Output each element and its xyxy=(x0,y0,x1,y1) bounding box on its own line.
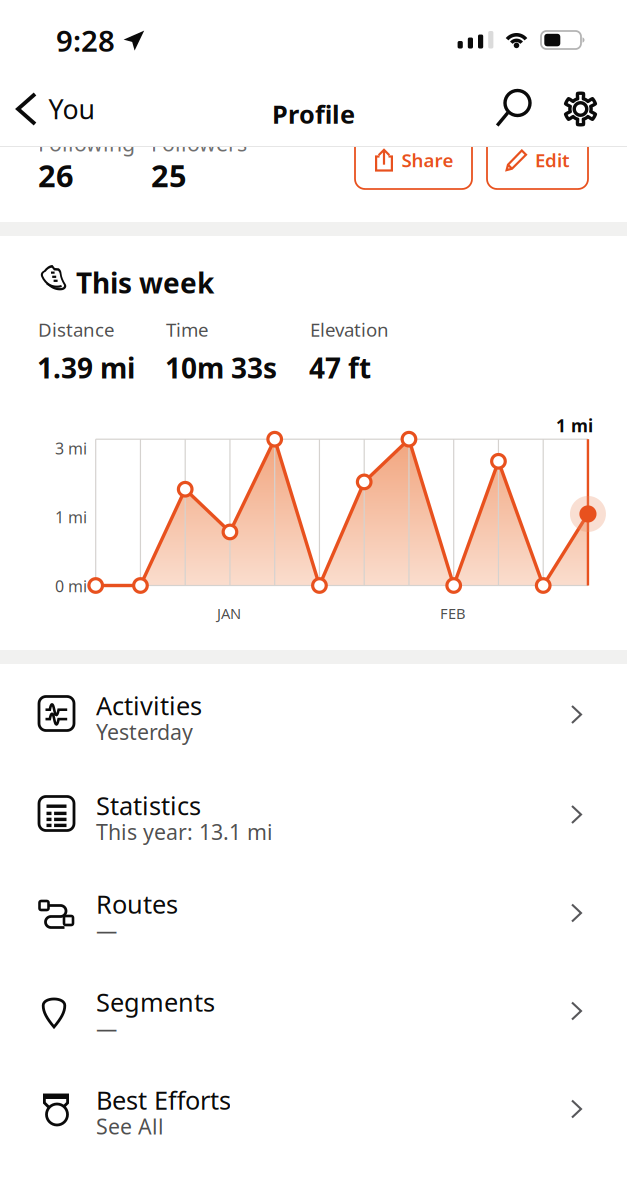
staticText: Yesterday xyxy=(96,717,193,746)
staticText: Followers xyxy=(151,129,247,157)
button[interactable]: Search xyxy=(474,72,552,146)
staticText: — xyxy=(96,1014,117,1042)
staticText: 47 ft xyxy=(309,349,371,386)
button[interactable]: Best Efforts xyxy=(0,1060,627,1158)
staticText: Edit xyxy=(535,148,570,172)
staticText: 0 mi xyxy=(55,575,87,597)
button[interactable]: Share xyxy=(355,131,472,189)
staticText: Distance xyxy=(38,317,115,342)
staticText: Following xyxy=(38,129,135,157)
button[interactable]: Segments xyxy=(0,962,627,1060)
staticText: This year: 13.1 mi xyxy=(96,817,273,846)
staticText: See All xyxy=(96,1112,164,1140)
staticText: 10m 33s xyxy=(165,349,277,386)
staticText: Routes xyxy=(96,887,178,921)
staticText: — xyxy=(96,916,117,944)
button[interactable]: Settings xyxy=(552,72,609,146)
staticText: 9:28 xyxy=(56,21,115,60)
staticText: Elevation xyxy=(310,317,389,342)
staticText: Share xyxy=(401,148,453,172)
staticText: Time xyxy=(166,317,209,342)
staticText: You xyxy=(48,91,94,127)
button[interactable]: Statistics xyxy=(0,765,627,864)
staticText: Activities xyxy=(96,688,202,722)
button[interactable]: Activities xyxy=(0,664,627,765)
staticText: Profile xyxy=(272,97,355,131)
staticText: 1 mi xyxy=(556,414,593,437)
staticText: 1 mi xyxy=(55,506,87,528)
staticText: 25 xyxy=(151,155,187,196)
staticText: This week xyxy=(76,264,214,301)
staticText: 26 xyxy=(38,155,74,196)
staticText: 3 mi xyxy=(55,438,87,459)
button[interactable]: You xyxy=(0,72,108,146)
staticText: Statistics xyxy=(96,788,201,822)
button[interactable]: Routes xyxy=(0,864,627,962)
staticText: 1.39 mi xyxy=(37,349,135,386)
staticText: FEB xyxy=(440,603,466,623)
staticText: Best Efforts xyxy=(96,1083,231,1117)
staticText: Segments xyxy=(96,985,215,1019)
staticText: JAN xyxy=(217,603,241,623)
button[interactable]: Edit xyxy=(487,131,588,189)
